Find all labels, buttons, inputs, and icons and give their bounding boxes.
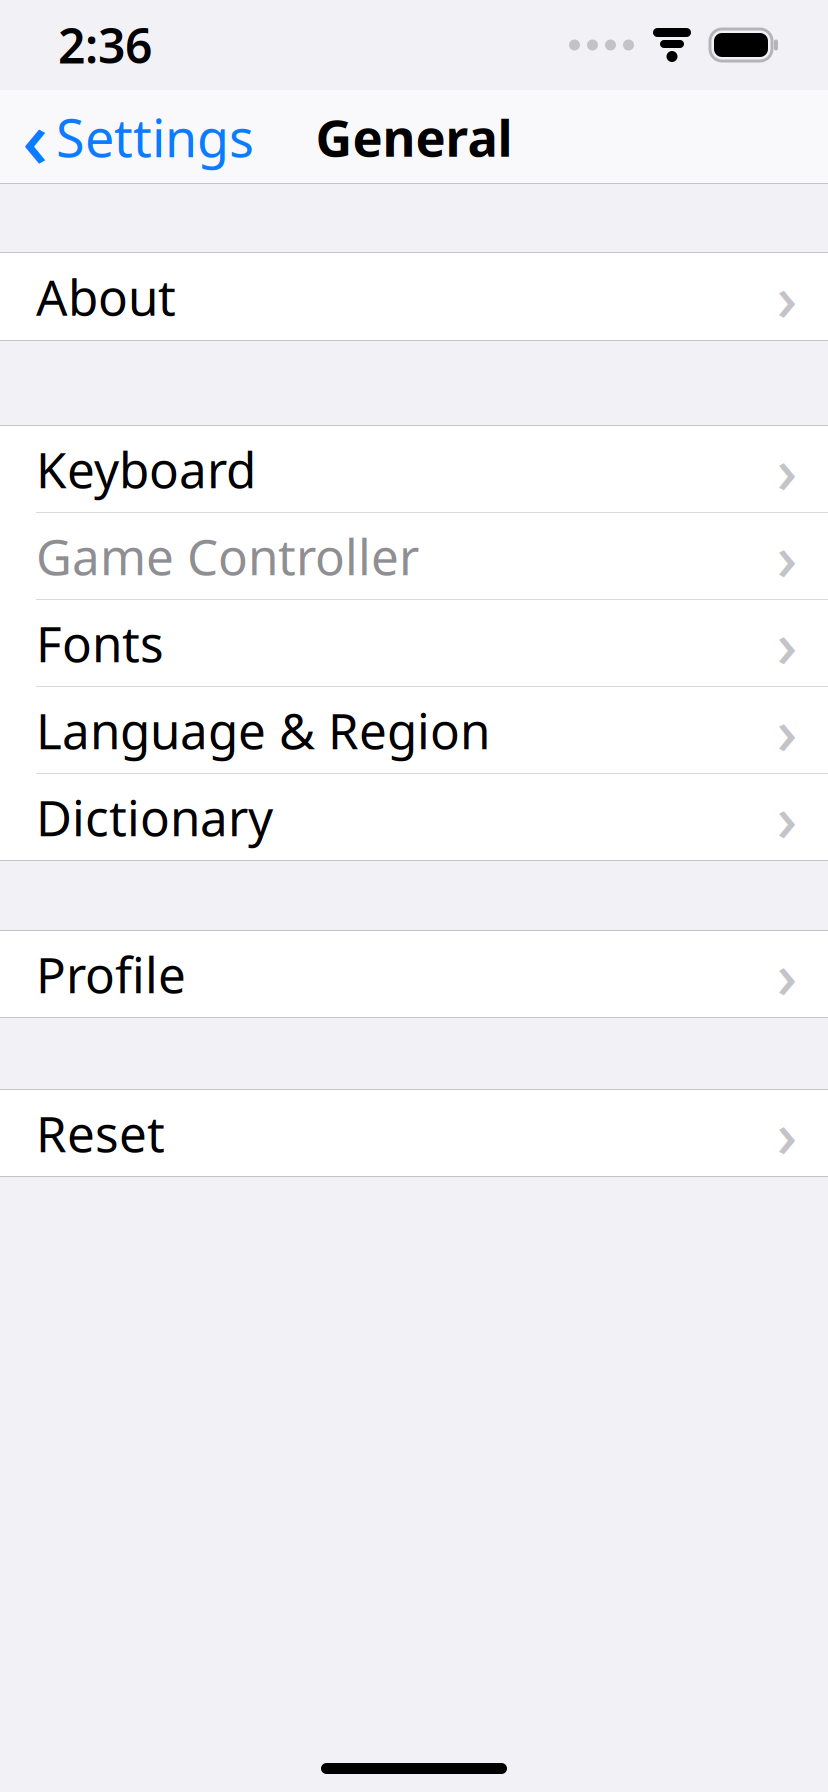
button[interactable]: About bbox=[0, 253, 828, 340]
staticText: › bbox=[776, 774, 797, 859]
staticText: Game Controller bbox=[36, 523, 419, 589]
staticText: Fonts bbox=[36, 610, 164, 676]
staticText: Profile bbox=[36, 941, 186, 1007]
button[interactable]: Profile bbox=[0, 931, 828, 1017]
button[interactable]: Dictionary bbox=[0, 774, 828, 860]
button[interactable]: Language & Region bbox=[0, 687, 828, 773]
staticText: › bbox=[776, 513, 797, 598]
button[interactable]: Game Controller bbox=[0, 513, 828, 599]
staticText: Settings bbox=[56, 102, 254, 172]
staticText: › bbox=[776, 426, 797, 511]
staticText: Reset bbox=[36, 1100, 165, 1166]
staticText: ‹ bbox=[22, 84, 48, 190]
button[interactable]: Keyboard bbox=[0, 426, 828, 512]
staticText: › bbox=[776, 931, 797, 1016]
staticText: › bbox=[776, 600, 797, 685]
staticText: Dictionary bbox=[36, 784, 273, 850]
staticText: 2:36 bbox=[58, 13, 152, 77]
staticText: › bbox=[776, 1090, 797, 1175]
staticText: › bbox=[776, 254, 797, 339]
button[interactable]: Fonts bbox=[0, 600, 828, 686]
staticText: General bbox=[315, 103, 512, 171]
staticText: › bbox=[776, 687, 797, 772]
button[interactable]: Reset bbox=[0, 1090, 828, 1176]
staticText: About bbox=[36, 264, 176, 329]
staticText: Language & Region bbox=[36, 697, 490, 763]
button[interactable]: ‹ bbox=[0, 80, 266, 194]
staticText: Keyboard bbox=[36, 436, 256, 502]
